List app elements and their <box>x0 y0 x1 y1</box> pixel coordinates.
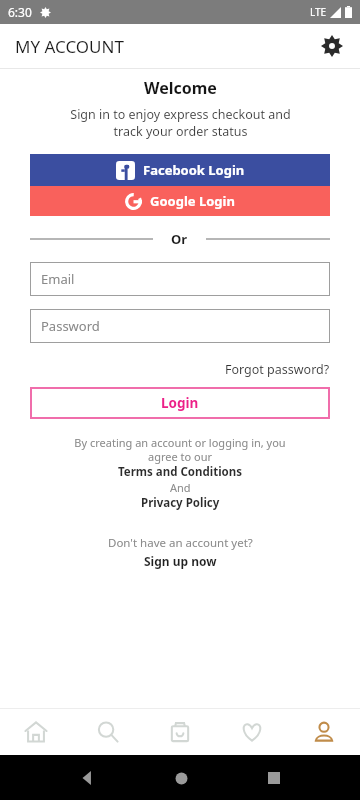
staticText: Privacy Policy <box>141 495 220 511</box>
staticText: Sign in to enjoy express checkout and tr… <box>70 106 291 140</box>
button[interactable]: Facebook Login <box>30 154 330 186</box>
button[interactable]: Google Login <box>30 186 330 216</box>
button[interactable]: Privacy Policy <box>141 495 220 511</box>
staticText: Login <box>161 394 199 412</box>
button[interactable]: Forgot password? <box>225 361 330 378</box>
staticText: Facebook Login <box>143 161 245 179</box>
staticText: Terms and Conditions <box>118 464 243 480</box>
button[interactable]: Home <box>0 709 72 755</box>
button[interactable]: Account <box>288 709 360 755</box>
staticText: Forgot password? <box>225 361 330 378</box>
staticText: Google Login <box>150 192 235 210</box>
staticText: Sign up now <box>144 553 217 569</box>
button[interactable]: Settings <box>314 28 350 64</box>
button[interactable]: Wishlist <box>216 709 288 755</box>
button[interactable]: Sign up now <box>144 553 217 569</box>
button[interactable]: Password <box>30 309 330 343</box>
button[interactable]: Terms and Conditions <box>118 464 243 480</box>
staticText: By creating an account or logging in, yo… <box>74 435 286 464</box>
staticText: Email <box>41 270 75 288</box>
staticText: Password <box>41 317 100 335</box>
button[interactable]: Bag <box>144 709 216 755</box>
button[interactable]: Login <box>30 387 330 419</box>
staticText: MY ACCOUNT <box>15 35 124 58</box>
staticText: 6:30 <box>8 4 32 20</box>
staticText: Or <box>171 230 188 248</box>
staticText: Welcome <box>144 77 217 99</box>
staticText: Don't have an account yet? <box>108 535 253 551</box>
button[interactable]: Search <box>72 709 144 755</box>
staticText: And <box>170 480 191 495</box>
staticText: LTE <box>310 5 327 19</box>
button[interactable]: Email <box>30 262 330 296</box>
